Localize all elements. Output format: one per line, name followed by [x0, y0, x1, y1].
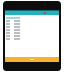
- button[interactable]: [6, 35, 59, 37]
- button[interactable]: [6, 32, 59, 34]
- button[interactable]: [6, 20, 59, 22]
- button[interactable]: [6, 26, 59, 28]
- button[interactable]: [5, 57, 59, 62]
- button[interactable]: [6, 23, 59, 25]
- button[interactable]: [6, 38, 59, 40]
- button[interactable]: [6, 29, 59, 31]
